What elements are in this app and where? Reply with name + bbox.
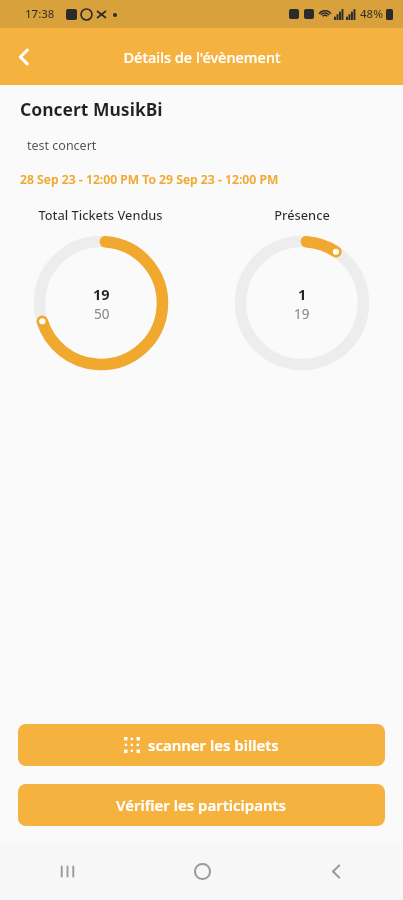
staticText: Concert MusikBi: [20, 97, 163, 121]
staticText: 19: [294, 305, 310, 323]
staticText: scanner les billets: [148, 735, 279, 755]
staticText: Présence: [274, 206, 330, 223]
button[interactable]: Back: [269, 843, 403, 900]
staticText: 28 Sep 23 - 12:00 PM To 29 Sep 23 - 12:0…: [20, 171, 279, 188]
staticText: Total Tickets Vendus: [38, 206, 163, 223]
button[interactable]: Home: [135, 843, 269, 900]
button[interactable]: Recent apps: [0, 843, 135, 900]
staticText: Détails de l'évènement: [123, 47, 281, 67]
staticText: 1: [298, 284, 307, 304]
button[interactable]: scanner les billets: [18, 724, 385, 766]
staticText: 48%: [360, 6, 383, 22]
staticText: Vérifier les participants: [116, 795, 287, 815]
button[interactable]: Vérifier les participants: [18, 784, 385, 826]
staticText: test concert: [27, 137, 97, 154]
staticText: 50: [94, 305, 110, 323]
button[interactable]: Back: [0, 33, 48, 81]
staticText: 19: [93, 284, 110, 304]
staticText: 17:38: [25, 6, 55, 22]
